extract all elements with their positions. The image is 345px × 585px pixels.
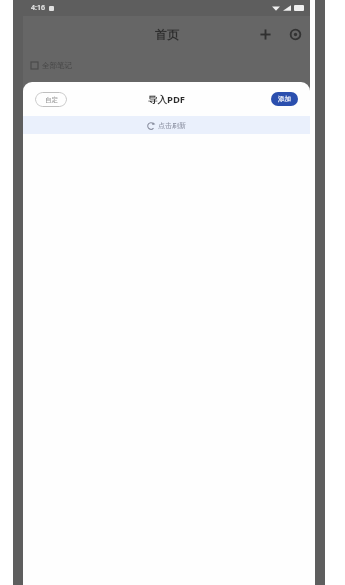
staticText: 自定	[45, 96, 58, 104]
staticText: 导入PDF	[148, 93, 186, 106]
staticText: 点击刷新	[158, 121, 186, 130]
staticText: 首页	[155, 27, 179, 42]
button[interactable]: 添加	[271, 92, 298, 106]
staticText: 添加	[278, 95, 291, 103]
button[interactable]: Add	[256, 25, 274, 43]
staticText: 全部笔记	[42, 61, 72, 70]
button[interactable]: 全部笔记	[31, 58, 310, 72]
button[interactable]: 自定	[35, 92, 67, 107]
button[interactable]: 点击刷新	[23, 116, 310, 134]
staticText: 4:16	[31, 3, 45, 13]
button[interactable]: Settings	[286, 25, 304, 43]
